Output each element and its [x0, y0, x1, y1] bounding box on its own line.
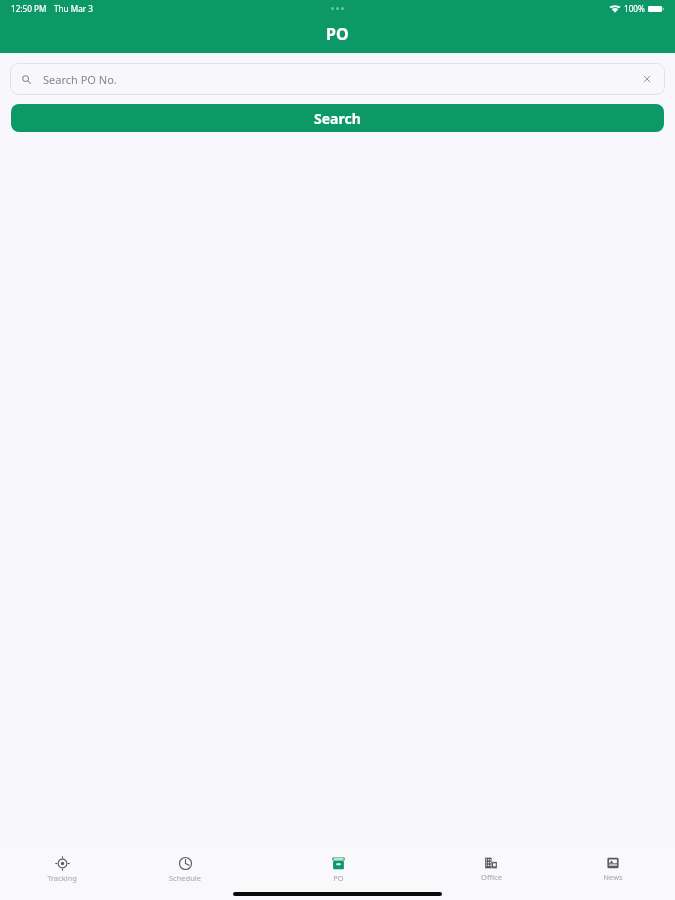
button[interactable]: Search PO No.	[10, 63, 665, 95]
staticText: News	[603, 872, 623, 882]
button[interactable]: Search	[11, 104, 664, 132]
staticText: Search	[314, 109, 361, 128]
staticText: 12:50 PM	[11, 3, 47, 14]
staticText: PO	[333, 873, 344, 883]
staticText: Schedule	[169, 873, 201, 883]
button[interactable]: Tracking	[17, 853, 107, 886]
staticText: Thu Mar 3	[54, 3, 94, 14]
staticText: Search PO No.	[43, 72, 117, 87]
button[interactable]: Schedule	[140, 853, 230, 886]
button[interactable]: PO	[293, 853, 383, 886]
button[interactable]: News	[568, 853, 658, 885]
button[interactable]: Office	[446, 853, 536, 885]
staticText: Tracking	[47, 873, 77, 883]
staticText: 100%	[624, 3, 645, 14]
staticText: Office	[481, 872, 502, 882]
staticText: PO	[326, 23, 349, 45]
button[interactable]: Clear search	[640, 72, 654, 86]
